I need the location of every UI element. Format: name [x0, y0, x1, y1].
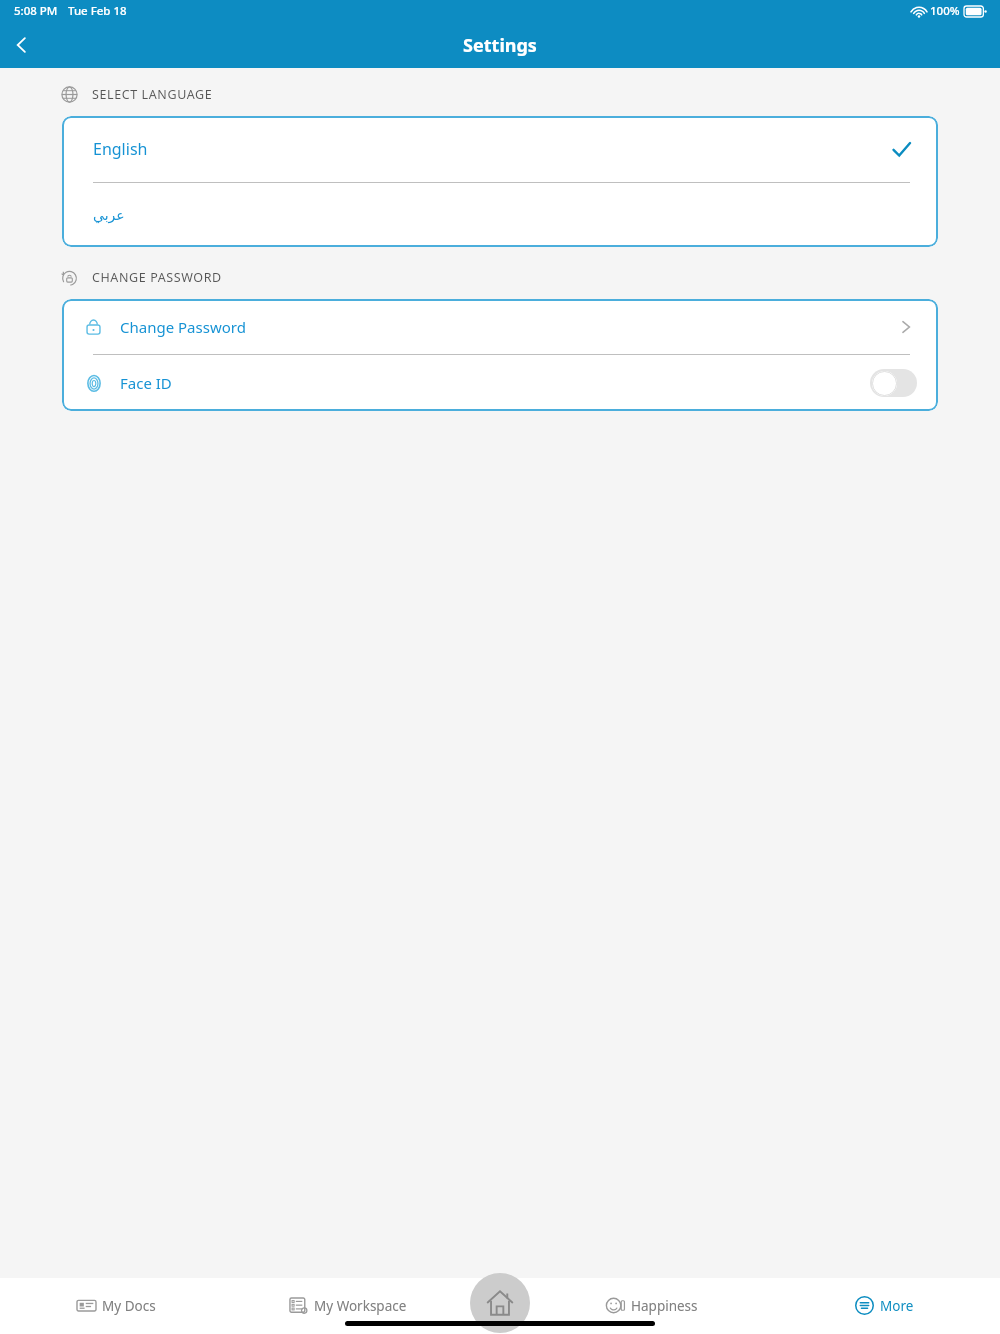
staticText: My Docs	[102, 1297, 156, 1315]
staticText: 5:08 PM	[14, 3, 58, 19]
button[interactable]: More	[768, 1278, 1000, 1334]
staticText: My Workspace	[314, 1297, 407, 1315]
button[interactable]: English	[62, 116, 938, 182]
button[interactable]: Home	[470, 1273, 530, 1333]
button[interactable]: Change Password	[62, 299, 938, 354]
staticText: Tue Feb 18	[68, 3, 127, 19]
button[interactable]: Face ID	[62, 355, 938, 411]
staticText: Settings	[463, 33, 537, 58]
staticText: Change Password	[120, 317, 246, 337]
button[interactable]: My Docs	[0, 1278, 232, 1334]
staticText: عربي	[93, 207, 125, 223]
staticText: 100%	[930, 3, 960, 19]
staticText: More	[880, 1297, 914, 1315]
staticText: Face ID	[120, 373, 172, 393]
button[interactable]: عربي	[62, 183, 938, 247]
staticText: English	[93, 138, 148, 160]
staticText: SELECT LANGUAGE	[92, 86, 213, 103]
staticText: CHANGE PASSWORD	[92, 269, 222, 286]
button[interactable]: My Workspace	[232, 1278, 464, 1334]
button[interactable]: Back	[0, 23, 44, 67]
button[interactable]: Happiness	[536, 1278, 768, 1334]
button[interactable]: Face ID toggle	[870, 369, 917, 397]
staticText: Happiness	[631, 1297, 698, 1315]
